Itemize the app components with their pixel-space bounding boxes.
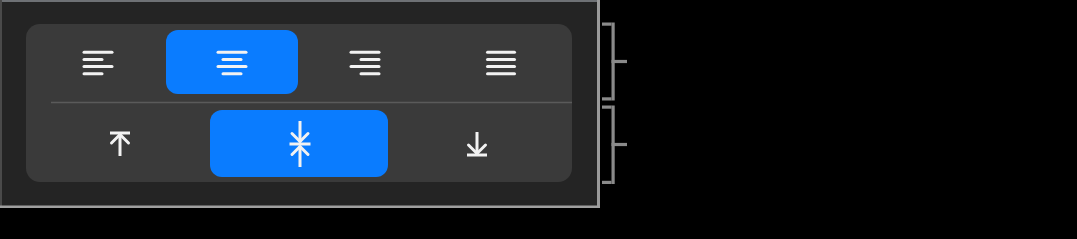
button[interactable]: Align bottom — [386, 103, 568, 182]
button[interactable]: Justify — [436, 24, 564, 102]
button[interactable]: Align left — [26, 24, 170, 102]
button[interactable]: Align middle — [214, 103, 386, 182]
button[interactable]: Align right — [294, 24, 436, 102]
button[interactable]: Align top — [26, 103, 214, 182]
button[interactable]: Align center — [170, 24, 294, 102]
